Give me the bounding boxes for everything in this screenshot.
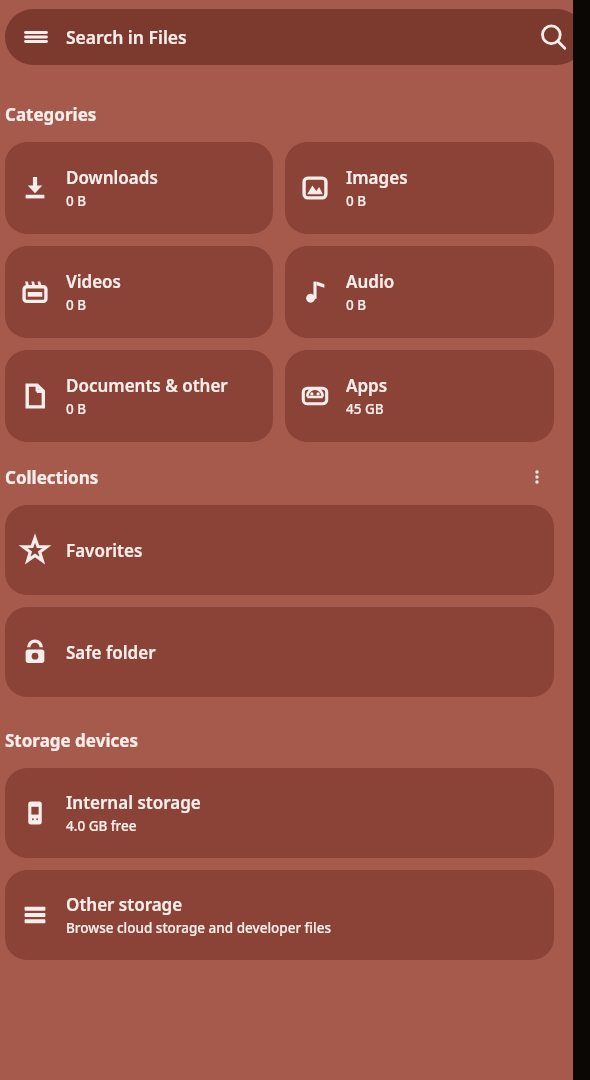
button[interactable]: Apps (285, 350, 554, 442)
button[interactable]: Documents & other (5, 350, 273, 442)
staticText: Apps (346, 374, 388, 397)
button[interactable]: Videos (5, 246, 273, 338)
button[interactable]: Images (285, 142, 554, 234)
staticText: Documents & other (66, 374, 228, 397)
button[interactable]: Menu (5, 9, 585, 65)
other: Search (540, 24, 567, 51)
staticText: Downloads (66, 166, 158, 189)
button[interactable]: Internal storage (5, 768, 554, 858)
staticText: Search in Files (66, 25, 187, 49)
staticText: 0 B (346, 192, 367, 210)
staticText: Other storage (66, 893, 183, 916)
staticText: Collections (5, 466, 99, 489)
staticText: 0 B (66, 192, 87, 210)
staticText: Images (346, 166, 408, 189)
button[interactable]: Audio (285, 246, 554, 338)
staticText: Safe folder (66, 641, 156, 664)
staticText: Videos (66, 270, 121, 293)
other: Menu (23, 24, 49, 50)
button[interactable]: Other storage (5, 870, 554, 960)
staticText: 4.0 GB free (66, 817, 137, 835)
staticText: Browse cloud storage and developer files (66, 919, 332, 937)
staticText: Favorites (66, 539, 143, 562)
button[interactable]: Downloads (5, 142, 273, 234)
button[interactable]: Safe folder (5, 607, 554, 697)
staticText: 0 B (346, 296, 367, 314)
staticText: 0 B (66, 296, 87, 314)
staticText: Categories (5, 103, 97, 126)
staticText: Audio (346, 270, 395, 293)
button[interactable]: Favorites (5, 505, 554, 595)
staticText: 0 B (66, 400, 87, 418)
button[interactable]: More options (520, 462, 554, 492)
staticText: 45 GB (346, 400, 384, 418)
staticText: Internal storage (66, 791, 201, 814)
staticText: Storage devices (5, 729, 138, 752)
